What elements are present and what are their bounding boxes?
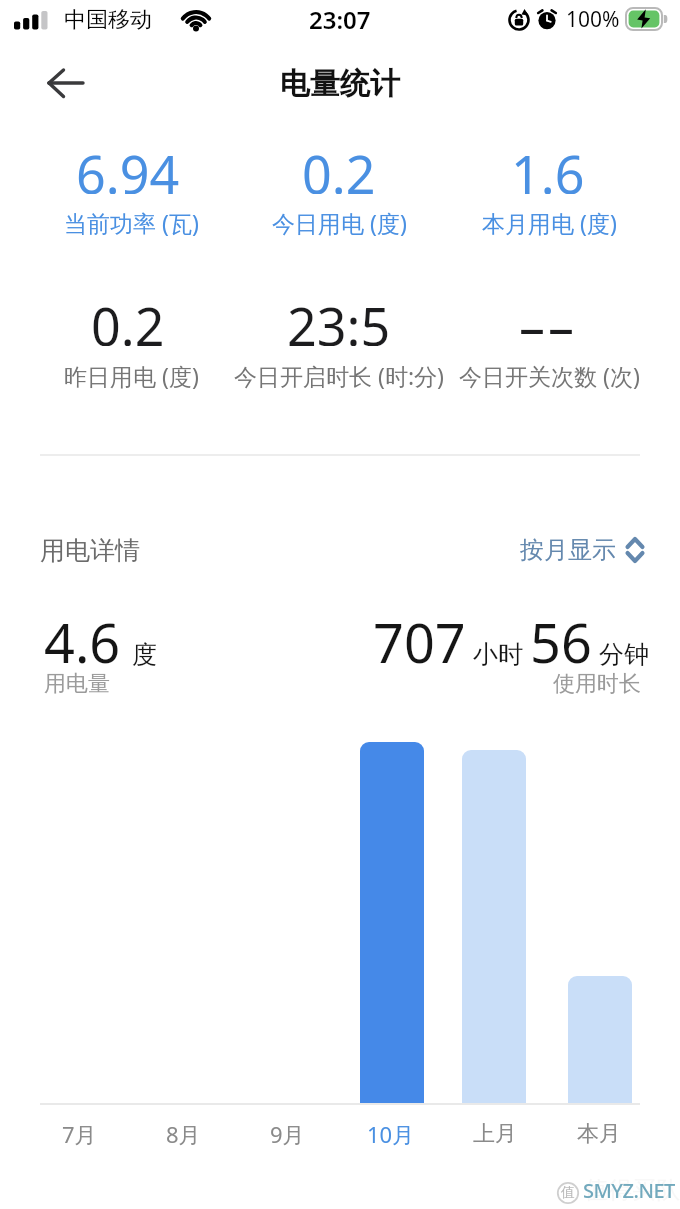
staticText: 使用时长 — [553, 670, 641, 698]
staticText: 10月 — [367, 1119, 415, 1149]
staticText: 分钟 — [599, 639, 649, 670]
staticText: 23:07 — [309, 3, 371, 36]
staticText: 今日开启时长 (时:分) — [234, 360, 444, 391]
staticText: 值 — [561, 1184, 575, 1202]
staticText: 56 — [530, 605, 592, 679]
staticText: 6.94 — [76, 138, 180, 194]
staticText: 100% — [566, 5, 620, 34]
staticText: –– — [519, 290, 578, 346]
staticText: 中国移动 — [64, 6, 152, 34]
staticText: 上月 — [473, 1120, 517, 1148]
staticText: 用电量 — [44, 670, 110, 698]
staticText: 当前功率 (瓦) — [64, 207, 199, 238]
staticText: 0.2 — [302, 138, 376, 194]
staticText: 7月 — [62, 1119, 97, 1149]
staticText: 用电详情 — [40, 535, 140, 565]
staticText: SMYZ.NET — [583, 1177, 675, 1203]
staticText: 23:5 — [287, 290, 391, 346]
staticText: 小时 — [473, 639, 523, 670]
staticText: 今日用电 (度) — [272, 207, 407, 238]
staticText: 707 — [373, 605, 466, 679]
staticText: 今日开关次数 (次) — [459, 360, 640, 391]
staticText: 度 — [132, 639, 157, 670]
staticText: 4.6 — [44, 605, 121, 679]
staticText: 值得买队 — [584, 1175, 680, 1205]
staticText: 0.2 — [91, 290, 165, 346]
staticText: 按月显示 — [520, 535, 616, 565]
staticText: 昨日用电 (度) — [64, 360, 199, 391]
staticText: 本月用电 (度) — [482, 207, 617, 238]
button[interactable]: 按月显示 — [505, 530, 645, 570]
staticText: 本月 — [577, 1120, 621, 1148]
staticText: 电量统计 — [280, 65, 400, 103]
button[interactable] — [38, 62, 94, 106]
staticText: 9月 — [270, 1119, 305, 1149]
staticText: 8月 — [166, 1119, 201, 1149]
staticText: 1.6 — [511, 138, 585, 194]
